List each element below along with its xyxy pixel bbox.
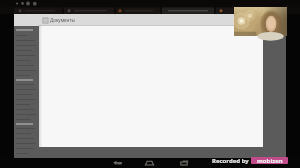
- staticText: mobizen: [257, 157, 283, 164]
- staticText: Recorded by: [212, 157, 249, 165]
- staticText: Документы: [50, 17, 75, 23]
- button[interactable]: Recent apps: [175, 158, 193, 168]
- button[interactable]: Back: [108, 158, 126, 168]
- button[interactable]: Документы: [43, 14, 75, 26]
- button[interactable]: Home: [140, 158, 158, 168]
